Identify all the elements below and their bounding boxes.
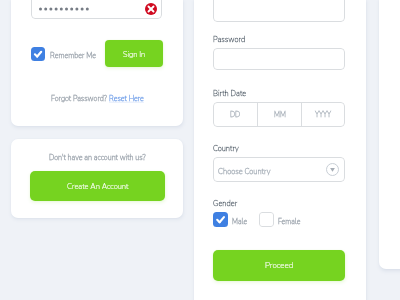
- staticText: Create An Account: [67, 181, 129, 191]
- staticText: Choose Country: [218, 166, 271, 176]
- button[interactable]: Clear password: [31, 0, 162, 19]
- staticText: Reset Here: [109, 94, 144, 104]
- staticText: Birth Date: [213, 88, 247, 98]
- staticText: Don't have an account with us?: [49, 153, 146, 163]
- staticText: Female: [278, 217, 301, 227]
- button[interactable]: Choose Country: [213, 157, 345, 182]
- staticText: MM: [274, 110, 286, 120]
- staticText: Male: [232, 217, 248, 227]
- button[interactable]: [213, 0, 345, 22]
- staticText: Password: [213, 34, 246, 44]
- button[interactable]: Proceed: [213, 250, 345, 281]
- button[interactable]: DD: [213, 102, 257, 127]
- button[interactable]: YYYY: [302, 102, 345, 127]
- staticText: Country: [213, 143, 239, 153]
- button[interactable]: Sign In: [105, 40, 163, 67]
- button[interactable]: Reset Here: [109, 94, 144, 104]
- staticText: Remember Me: [50, 51, 96, 61]
- button[interactable]: Remember Me: [31, 47, 96, 61]
- button[interactable]: Female: [259, 212, 301, 227]
- staticText: Proceed: [265, 260, 294, 271]
- button[interactable]: Clear password: [145, 3, 157, 15]
- staticText: Gender: [213, 198, 238, 208]
- staticText: Forgot Password?: [51, 94, 109, 104]
- button[interactable]: [213, 48, 345, 70]
- staticText: Sign In: [123, 49, 146, 59]
- button[interactable]: Male: [213, 212, 248, 227]
- button[interactable]: MM: [258, 102, 301, 127]
- button[interactable]: Create An Account: [30, 171, 165, 201]
- staticText: YYYY: [315, 110, 332, 120]
- staticText: DD: [230, 110, 241, 120]
